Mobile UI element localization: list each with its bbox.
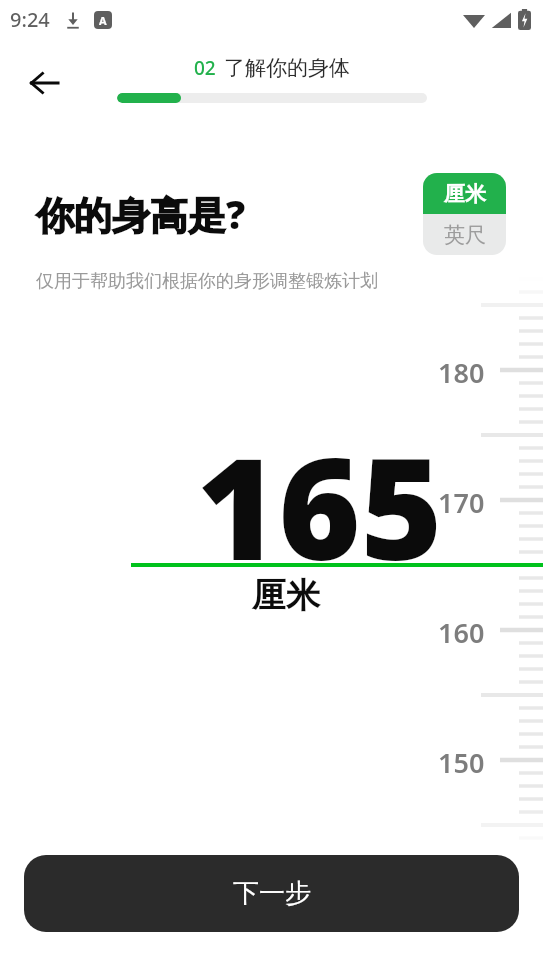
staticText: 厘米 xyxy=(444,181,486,207)
staticText: 170 xyxy=(438,484,485,521)
staticText: 180 xyxy=(438,354,485,391)
button[interactable]: 返回 xyxy=(20,59,68,107)
staticText: 02 xyxy=(194,55,216,81)
staticText: 下一步 xyxy=(233,877,311,910)
button[interactable]: 英尺 xyxy=(423,214,506,255)
staticText: 厘米 xyxy=(252,574,320,617)
staticText: 你的身高是? xyxy=(36,188,246,240)
staticText: 仅用于帮助我们根据你的身形调整锻炼计划 xyxy=(36,270,378,293)
staticText: A xyxy=(99,13,107,28)
staticText: 150 xyxy=(438,744,485,781)
button[interactable]: 厘米 xyxy=(423,173,506,214)
staticText: 165 xyxy=(196,410,443,601)
staticText: 英尺 xyxy=(444,222,486,248)
staticText: 了解你的身体 xyxy=(224,55,350,81)
staticText: 9:24 xyxy=(10,6,50,33)
button[interactable]: 下一步 xyxy=(24,855,519,932)
staticText: 160 xyxy=(438,614,485,651)
